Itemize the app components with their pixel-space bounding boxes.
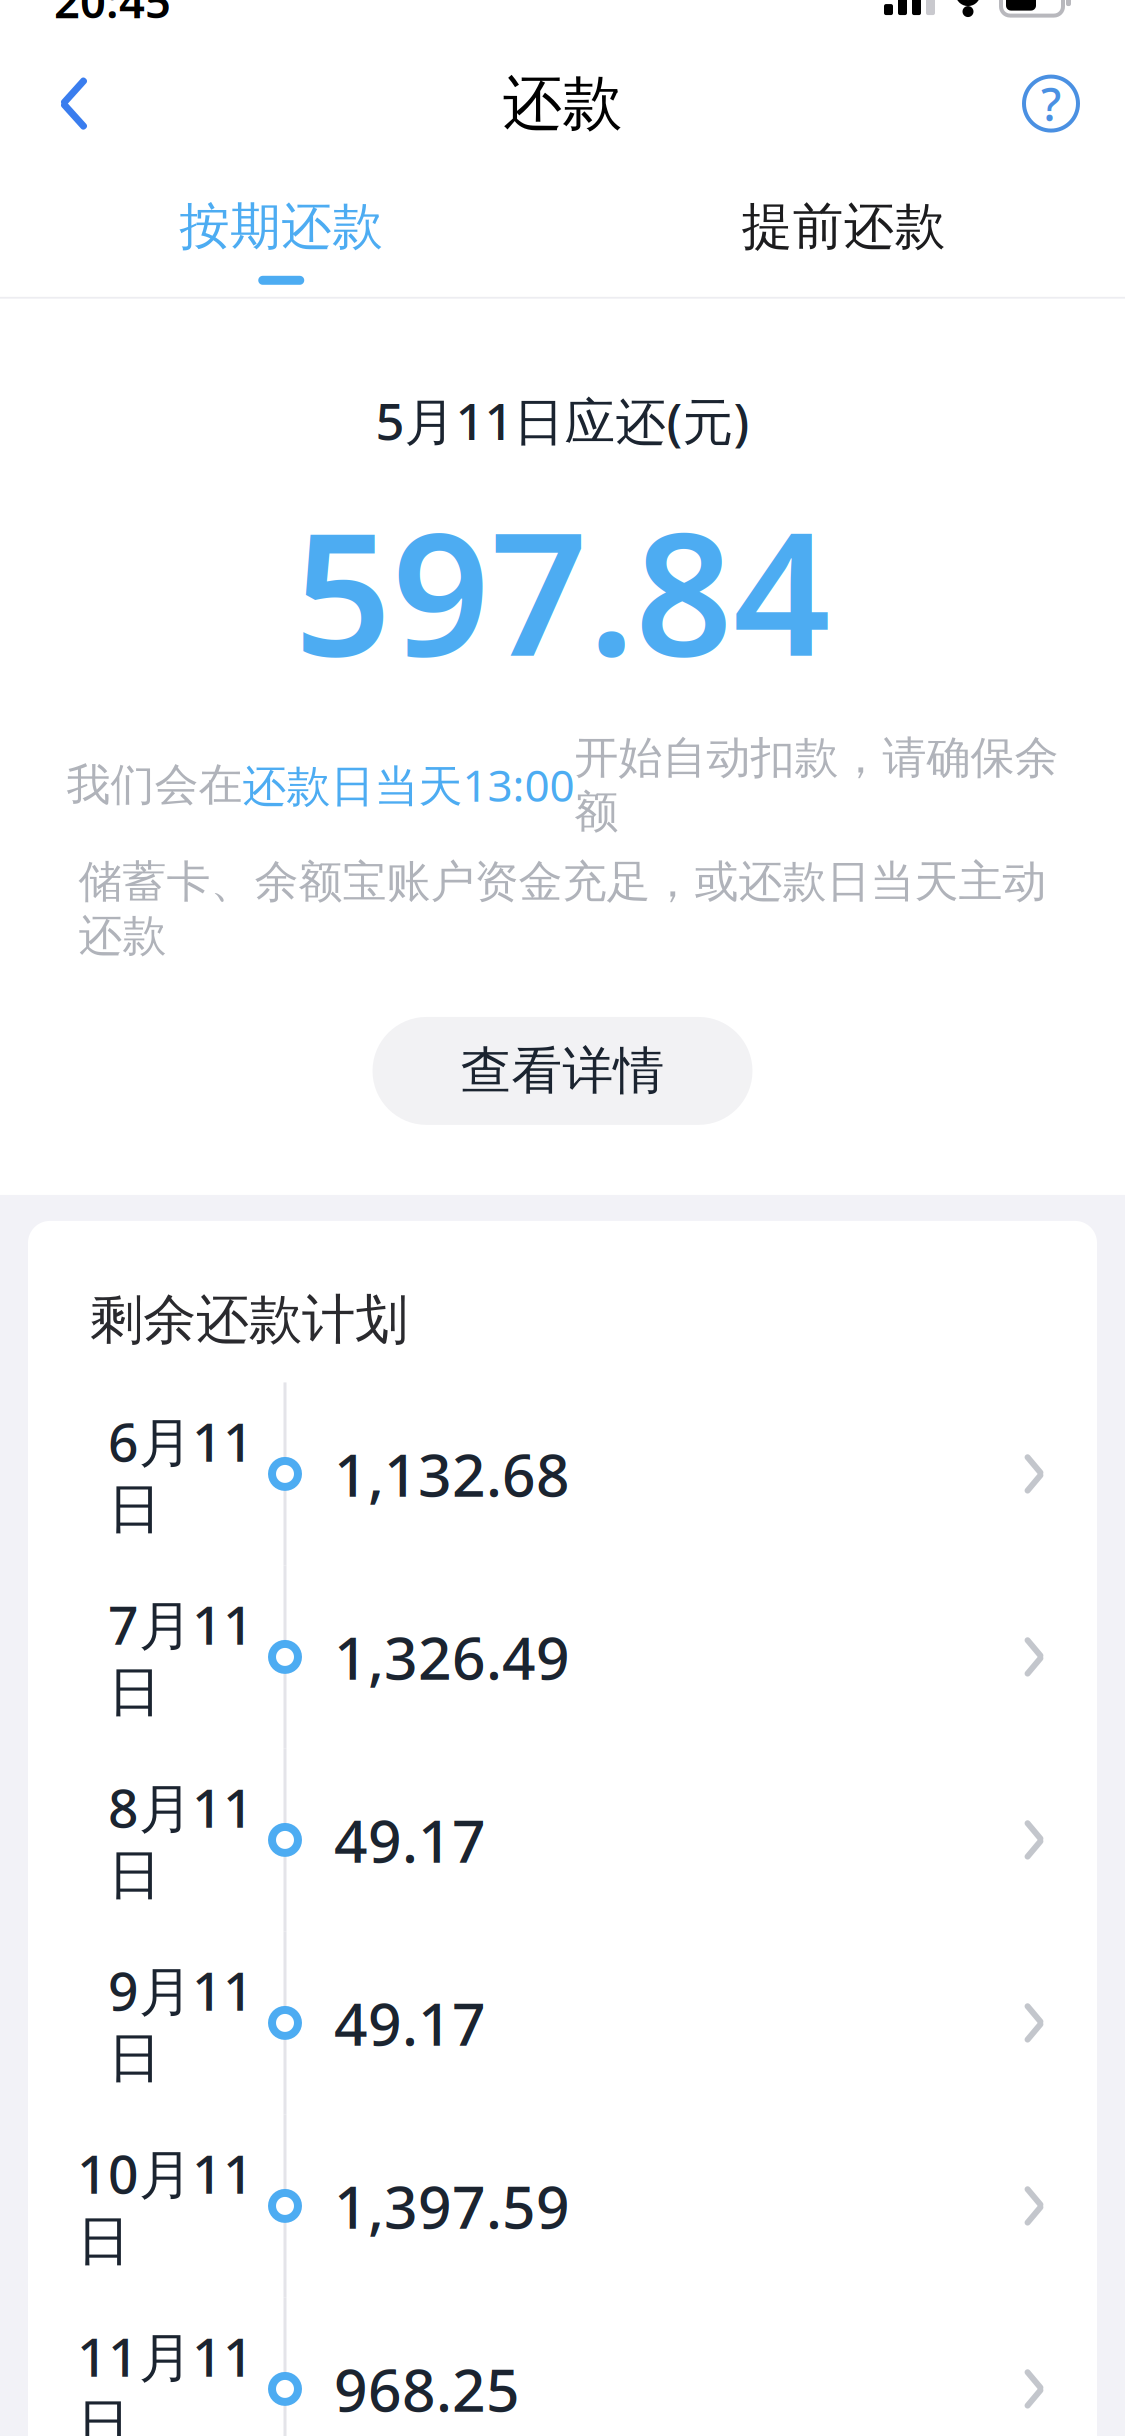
staticText: 还款日当天13:00 [242,756,574,814]
staticText: 968.25 [334,2350,520,2428]
staticText: 20:45 [54,0,171,31]
staticText: 剩余还款计划 [90,1287,408,1352]
button[interactable]: 8月11日 [28,1748,1097,1931]
staticText: 10月11日 [77,2138,254,2274]
staticText: 按期还款 [179,196,383,258]
button[interactable]: 返回 [24,54,124,154]
button[interactable]: 6月11日 [28,1382,1097,1565]
staticText: 597.84 [294,476,831,703]
button[interactable]: 提前还款 [562,162,1125,297]
staticText: 1,397.59 [334,2167,570,2245]
button[interactable]: 9月11日 [28,1931,1097,2114]
staticText: 我们会在 [66,758,242,812]
staticText: 开始自动扣款，请确保余额 [574,731,1058,839]
staticText: 查看详情 [460,1040,664,1102]
button[interactable]: 帮助 [1001,54,1101,154]
staticText: 1,132.68 [334,1435,570,1513]
staticText: 6月11日 [108,1406,254,1542]
staticText: 49.17 [334,1984,486,2062]
button[interactable]: 11月11日 [28,2297,1097,2436]
staticText: 9月11日 [108,1955,254,2091]
staticText: 49.17 [334,1801,486,1879]
button[interactable]: 7月11日 [28,1565,1097,1748]
staticText: 8月11日 [108,1772,254,1908]
button[interactable]: 查看详情 [372,1017,752,1125]
staticText: 5月11日应还(元) [375,387,749,454]
button[interactable]: 按期还款 [0,162,562,297]
staticText: 7月11日 [108,1589,254,1725]
staticText: 还款 [502,67,622,140]
staticText: ? [1041,73,1061,134]
staticText: 11月11日 [77,2321,254,2436]
staticText: 储蓄卡、余额宝账户资金充足，或还款日当天主动还款 [78,855,1046,963]
staticText: 1,326.49 [334,1618,570,1696]
button[interactable]: 10月11日 [28,2114,1097,2297]
staticText: 提前还款 [742,196,946,258]
